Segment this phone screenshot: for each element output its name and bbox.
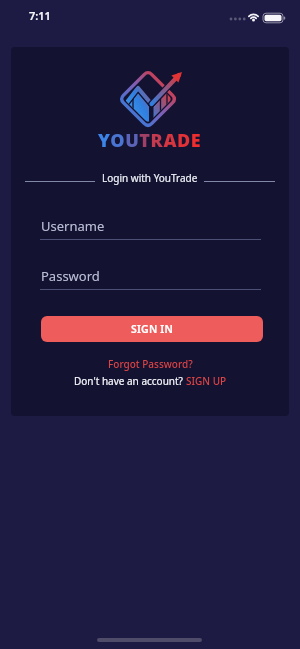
button[interactable]: SIGN IN — [41, 316, 263, 342]
staticText: YOUTRADE — [98, 128, 202, 153]
staticText: Don't have an account? — [74, 374, 186, 388]
staticText: 7:11 — [29, 8, 51, 23]
staticText: Login with YouTrade — [102, 171, 198, 185]
button[interactable]: SIGN UP — [186, 374, 227, 388]
button[interactable]: Password — [40, 265, 261, 291]
staticText: Username — [41, 217, 105, 235]
button[interactable]: Username — [40, 215, 261, 241]
staticText: SIGN IN — [131, 322, 173, 336]
button[interactable]: Forgot Password? — [108, 357, 193, 371]
staticText: Password — [41, 267, 100, 285]
